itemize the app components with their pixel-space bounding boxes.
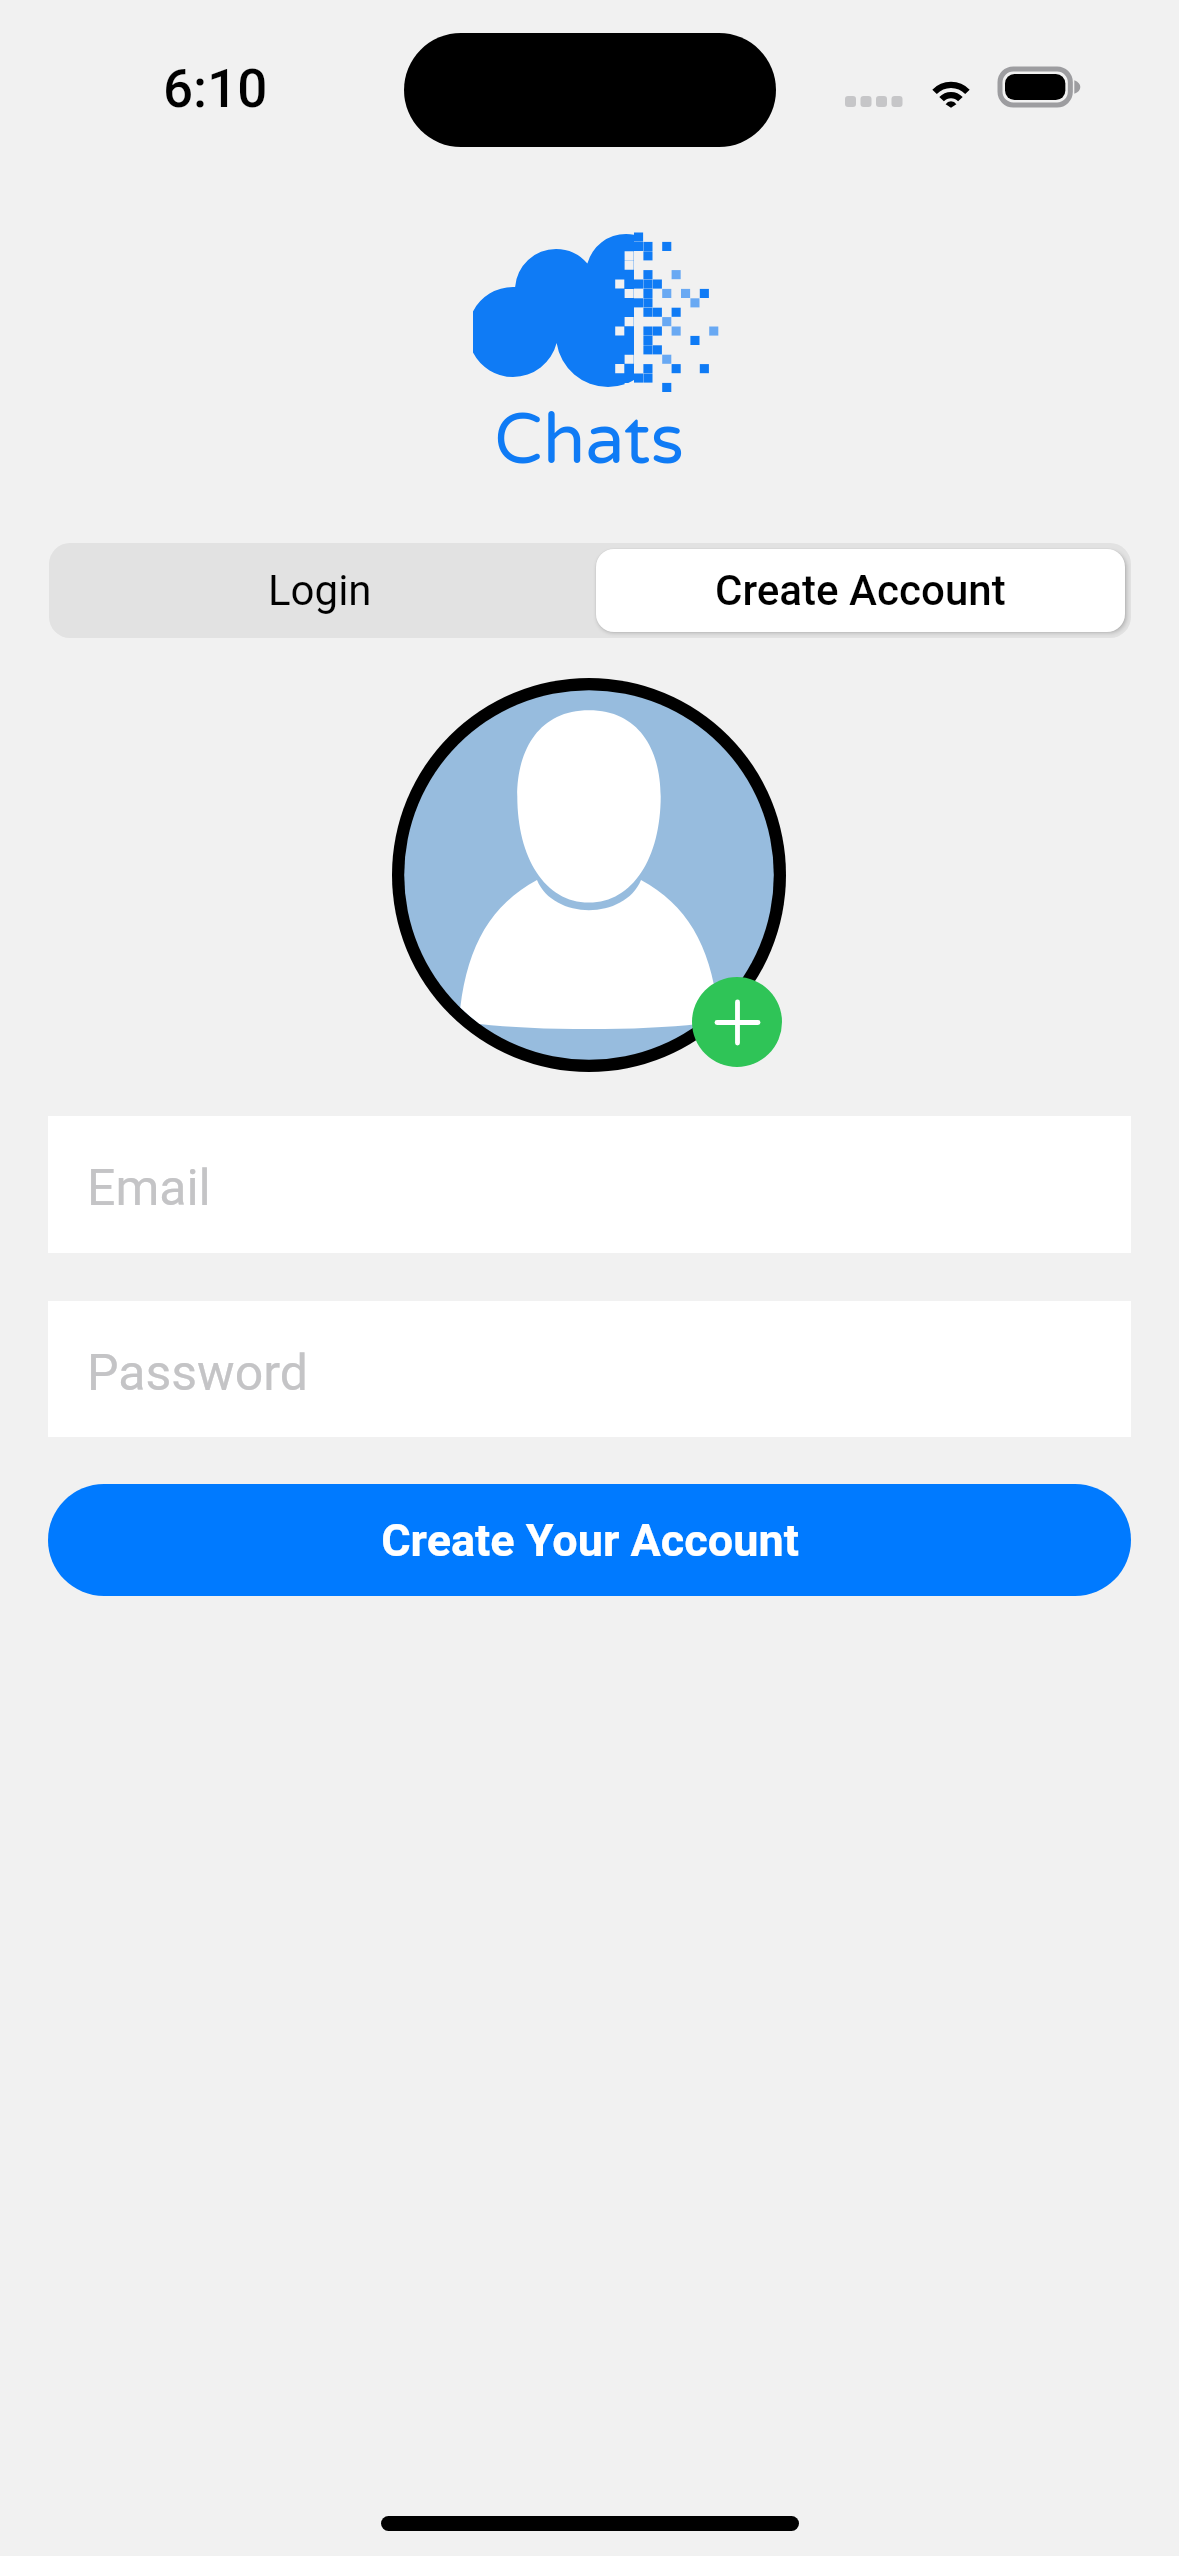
staticText: Password [87,1344,308,1403]
button[interactable]: Add profile photo [692,977,782,1067]
staticText: Login [268,566,372,615]
staticText: Email [87,1159,211,1218]
button[interactable]: Create Account [596,549,1125,632]
button[interactable]: Password [48,1301,1131,1437]
staticText: Create Your Account [381,1514,799,1567]
button[interactable]: Email [48,1116,1131,1253]
button[interactable]: Login [49,543,590,638]
staticText: Create Account [715,566,1006,615]
button[interactable]: Create Your Account [48,1484,1131,1596]
staticText: 6:10 [163,58,268,120]
staticText: Chats [494,399,685,483]
